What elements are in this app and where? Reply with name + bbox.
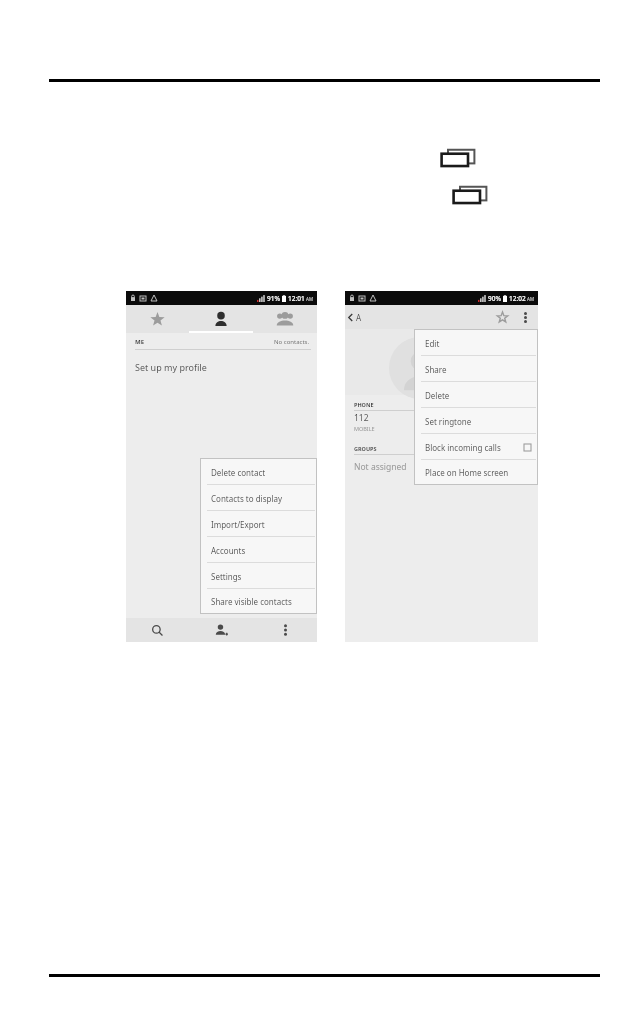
staticText: Settings	[211, 571, 242, 582]
staticText: Share visible contacts	[211, 596, 292, 607]
staticText: Not assigned	[354, 461, 407, 473]
button[interactable]: More options	[253, 618, 317, 642]
button[interactable]: Import/Export	[201, 511, 316, 537]
staticText: 91%	[267, 294, 280, 303]
button[interactable]: Share	[415, 356, 537, 382]
staticText: Import/Export	[211, 519, 265, 530]
button[interactable]: Set up my profile	[126, 353, 317, 381]
button[interactable]: Recent apps key	[452, 185, 492, 207]
staticText: MOBILE	[354, 425, 375, 432]
button[interactable]: A	[347, 312, 362, 323]
button[interactable]: 112	[345, 412, 538, 431]
staticText: A	[356, 312, 362, 323]
staticText: ME	[135, 338, 145, 346]
staticText: 112	[354, 412, 369, 424]
staticText: Delete	[425, 390, 450, 401]
staticText: Block incoming calls	[425, 442, 501, 453]
button[interactable]: Share visible contacts	[201, 589, 316, 613]
button[interactable]: Set ringtone	[415, 408, 537, 434]
staticText: Edit	[425, 338, 440, 349]
button[interactable]: Search	[126, 618, 189, 642]
button[interactable]: Accounts	[201, 537, 316, 563]
button[interactable]: Not assigned	[345, 456, 538, 478]
staticText: Delete contact	[211, 467, 266, 478]
staticText: AM	[527, 296, 534, 302]
button[interactable]: Add contact	[189, 618, 253, 642]
button[interactable]: Delete	[415, 382, 537, 408]
staticText: 12:01	[288, 294, 305, 303]
staticText: Place on Home screen	[425, 467, 509, 478]
button[interactable]: Place on Home screen	[415, 460, 537, 484]
staticText: Set ringtone	[425, 416, 472, 427]
staticText: PHONE	[354, 401, 374, 408]
button[interactable]: Settings	[201, 563, 316, 589]
staticText: Share	[425, 364, 447, 375]
button[interactable]: Contacts	[189, 305, 253, 333]
staticText: GROUPS	[354, 445, 377, 452]
staticText: 90%	[488, 294, 501, 303]
button[interactable]: Favourites	[126, 305, 189, 333]
button[interactable]: Recent apps key	[440, 148, 480, 170]
staticText: 12:02	[509, 294, 526, 303]
button[interactable]: Edit	[415, 330, 537, 356]
button[interactable]: More options	[517, 309, 533, 325]
staticText: Accounts	[211, 545, 246, 556]
staticText: Contacts to display	[211, 493, 283, 504]
button[interactable]: Delete contact	[201, 459, 316, 485]
staticText: No contacts.	[274, 338, 310, 346]
button[interactable]: Groups	[253, 305, 317, 333]
staticText: AM	[306, 296, 313, 302]
button[interactable]: Block incoming calls	[415, 434, 537, 460]
button[interactable]: Contacts to display	[201, 485, 316, 511]
button[interactable]: Favourite	[493, 308, 511, 326]
staticText: Set up my profile	[135, 361, 207, 373]
